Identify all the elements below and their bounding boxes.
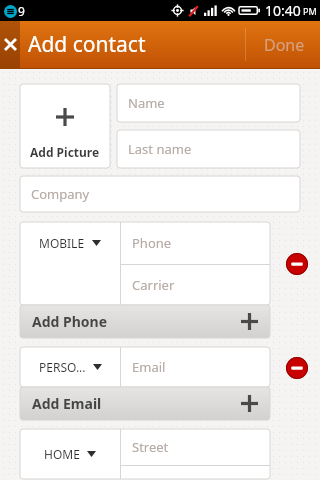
staticText: PERSO... xyxy=(39,359,86,375)
staticText: Name xyxy=(128,94,165,112)
staticText: Email xyxy=(132,358,166,376)
button[interactable]: Remove phone xyxy=(284,251,310,277)
staticText: 10:40 xyxy=(265,1,301,20)
staticText: Add Phone xyxy=(32,312,108,331)
button[interactable]: Last name xyxy=(117,130,300,168)
staticText: Company xyxy=(31,185,90,203)
staticText: Street xyxy=(132,438,169,456)
button[interactable]: Add Phone xyxy=(20,305,270,338)
button[interactable]: Close xyxy=(0,21,20,68)
button[interactable]: Street xyxy=(121,429,270,465)
staticText: Add contact xyxy=(28,30,146,59)
staticText: 9 xyxy=(18,3,25,19)
button[interactable]: Company xyxy=(20,176,300,212)
staticText: MOBILE xyxy=(39,235,85,251)
button[interactable]: MOBILE xyxy=(20,222,120,264)
staticText: Carrier xyxy=(132,276,175,294)
staticText: Last name xyxy=(128,140,192,158)
button[interactable]: Remove email xyxy=(284,355,310,381)
button[interactable]: Add Picture xyxy=(20,84,110,168)
staticText: HOME xyxy=(44,446,80,462)
button[interactable]: PERSO... xyxy=(20,347,120,387)
staticText: Add Picture xyxy=(30,144,100,160)
button[interactable]: Phone xyxy=(121,222,270,264)
button[interactable]: Name xyxy=(117,84,300,122)
staticText: Done xyxy=(264,34,305,56)
staticText: Add Email xyxy=(32,394,102,413)
staticText: Phone xyxy=(132,234,172,252)
button[interactable]: Add Email xyxy=(20,387,270,420)
button[interactable]: HOME xyxy=(20,429,120,479)
button[interactable]: Email xyxy=(121,347,270,387)
staticText: PM xyxy=(303,5,317,17)
button[interactable]: Carrier xyxy=(121,265,270,305)
button[interactable]: Done xyxy=(248,21,320,68)
